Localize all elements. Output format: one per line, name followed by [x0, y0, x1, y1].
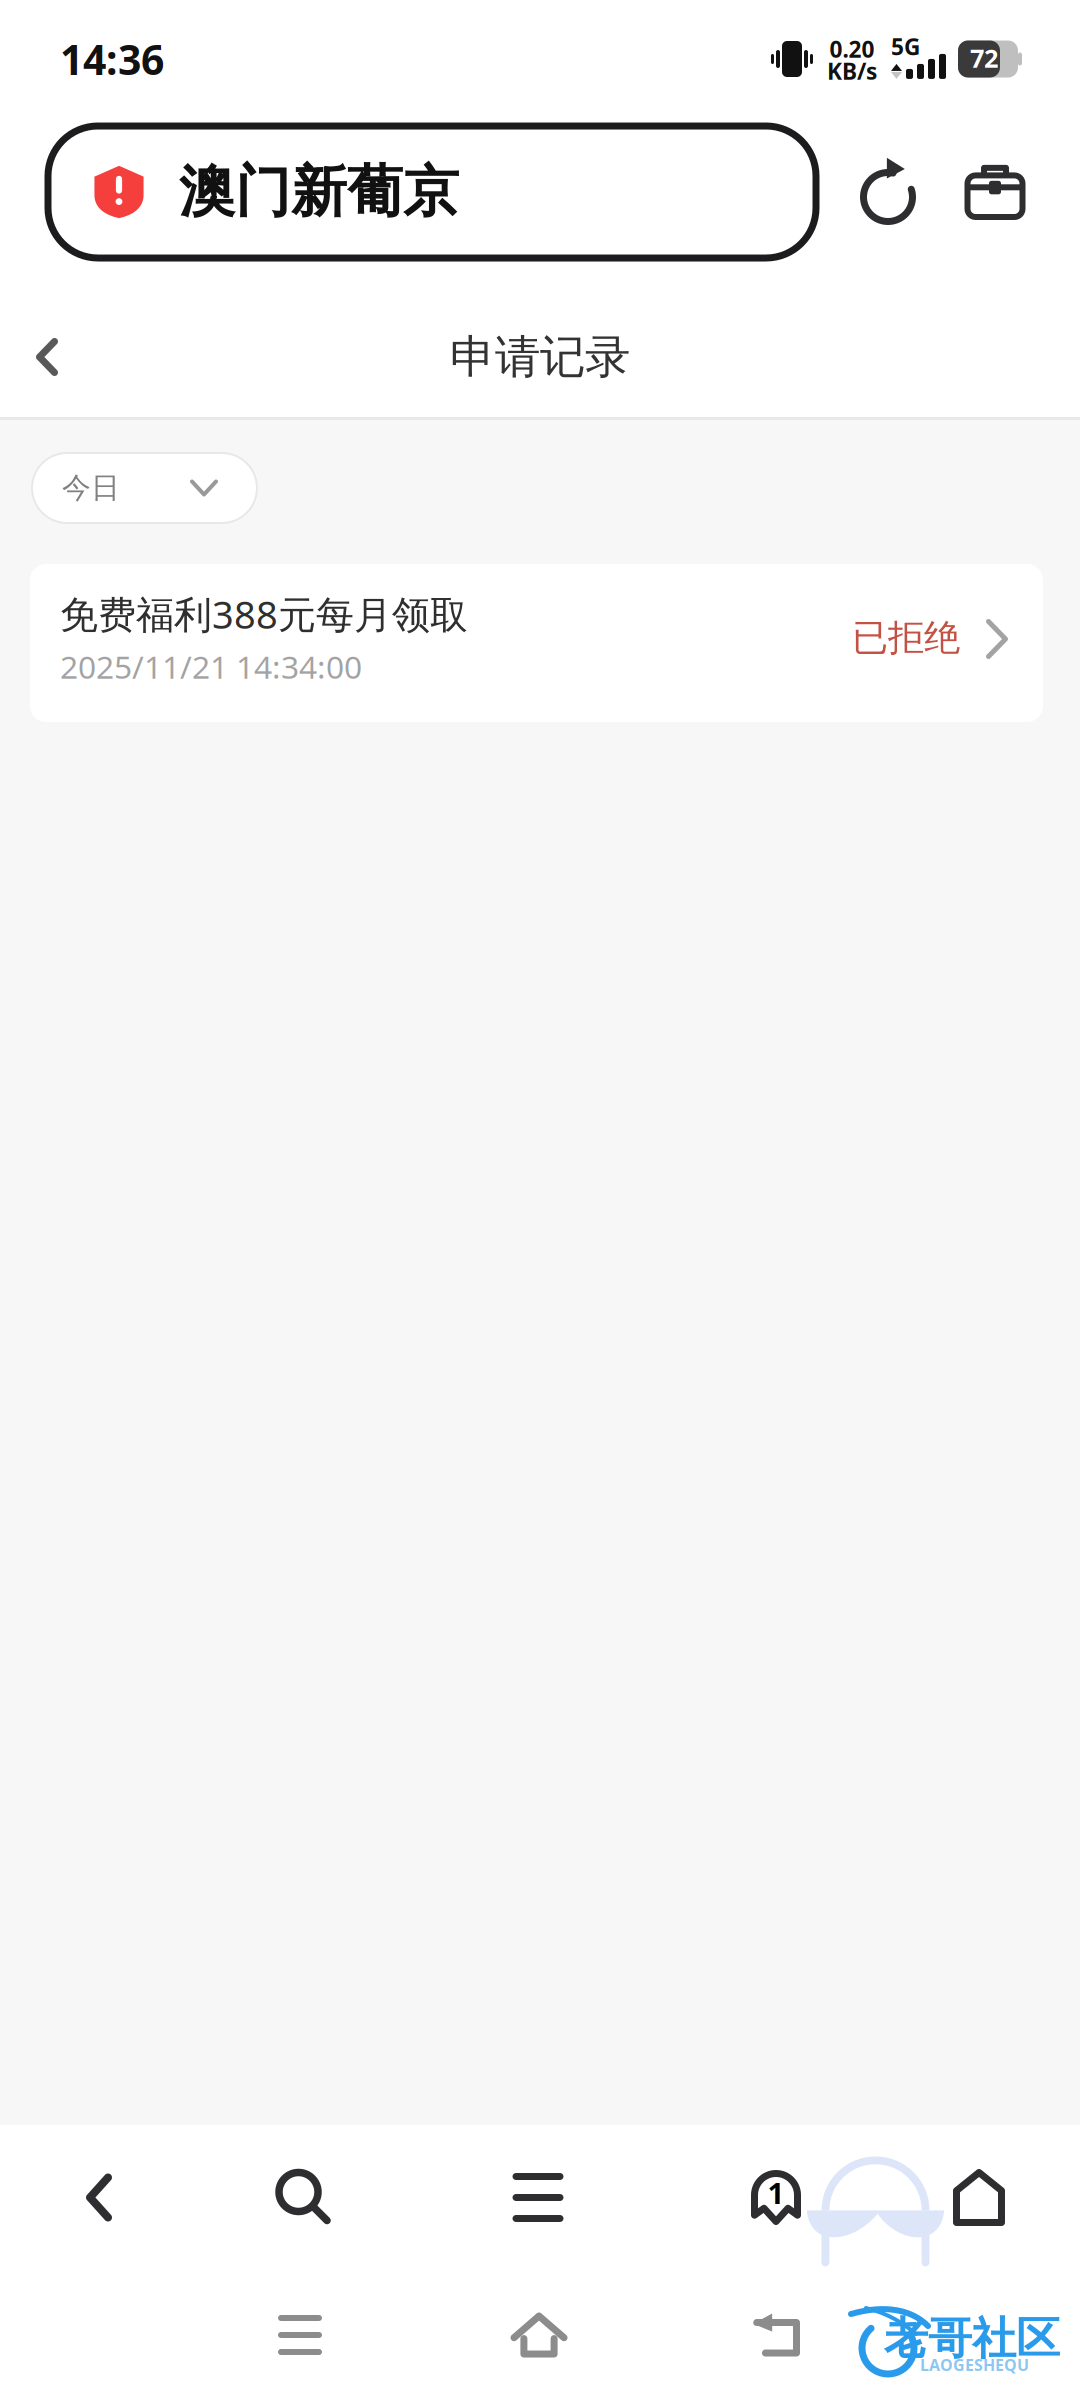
staticText: 老哥社区 — [884, 2311, 1060, 2366]
staticText: 申请记录 — [450, 328, 630, 386]
button[interactable]: 今日 — [32, 453, 257, 523]
staticText: 1 — [767, 2173, 784, 2213]
staticText: 免费福利388元每月领取 — [60, 588, 468, 640]
button[interactable]: Toolbox — [954, 126, 1036, 258]
button[interactable]: 澳门新葡京 — [48, 126, 816, 258]
staticText: 澳门新葡京 — [179, 157, 459, 227]
staticText: 2025/11/21 14:34:00 — [60, 645, 362, 688]
button[interactable]: Back — [40, 2125, 158, 2270]
button[interactable]: Menu — [479, 2125, 597, 2270]
staticText: 14:36 — [60, 31, 164, 87]
staticText: 已拒绝 — [852, 615, 960, 661]
staticText: 72 — [970, 41, 998, 75]
button[interactable]: Refresh — [847, 126, 929, 258]
button[interactable]: Recents — [220, 2270, 380, 2400]
button[interactable]: Tabs — [717, 2125, 835, 2270]
button[interactable]: Back — [7, 309, 87, 405]
staticText: 今日 — [62, 470, 120, 506]
button[interactable]: Home — [459, 2270, 619, 2400]
button[interactable]: Search — [244, 2125, 362, 2270]
button[interactable]: Back — [696, 2270, 856, 2400]
staticText: LAOGESHEQU — [920, 2354, 1029, 2376]
staticText: 0.20 — [829, 34, 874, 64]
button[interactable]: Home — [920, 2125, 1038, 2270]
staticText: KB/s — [827, 55, 877, 86]
staticText: 5G — [891, 31, 920, 62]
button[interactable]: 免费福利388元每月领取 — [30, 564, 1043, 722]
